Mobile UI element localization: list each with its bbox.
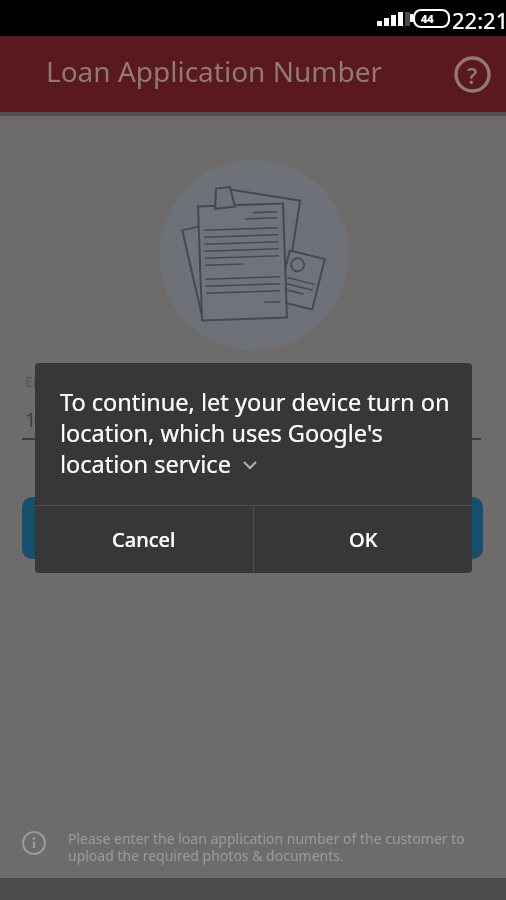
staticText: 22:21	[452, 5, 506, 35]
staticText: upload the required photos & documents.	[68, 846, 344, 865]
staticText: Please enter the loan application number…	[68, 829, 465, 848]
staticText: ?	[467, 60, 478, 90]
staticText: To continue, let your device turn on loc…	[60, 386, 450, 480]
staticText: Loan Application Number	[46, 52, 383, 90]
staticText: 44	[421, 11, 434, 26]
staticText: Cancel	[112, 526, 176, 553]
button[interactable]: ?	[452, 54, 493, 95]
staticText: 1234	[25, 406, 71, 433]
staticText: Enter Loan Application Number	[25, 372, 232, 391]
staticText: OK	[349, 526, 378, 553]
button[interactable]: OK	[254, 506, 472, 573]
button[interactable]	[22, 497, 483, 559]
button[interactable]: Cancel	[35, 506, 253, 573]
